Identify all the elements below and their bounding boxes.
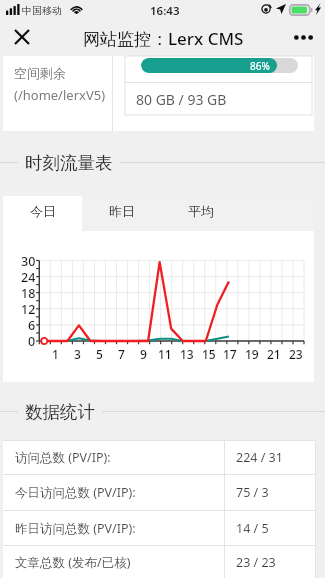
staticText: (/home/lerxV5) bbox=[14, 86, 106, 104]
button[interactable]: 今日 bbox=[3, 196, 82, 231]
button[interactable]: 昨日访问总数 (PV/IP): bbox=[3, 511, 316, 545]
staticText: 今日访问总数 (PV/IP): bbox=[15, 484, 136, 501]
staticText: 17 bbox=[223, 346, 237, 362]
staticText: 网站监控：Lerx CMS bbox=[83, 27, 244, 50]
staticText: 5 bbox=[96, 346, 103, 362]
staticText: 数据统计 bbox=[25, 401, 95, 422]
button[interactable]: More options bbox=[287, 23, 320, 51]
staticText: 11 bbox=[158, 346, 172, 362]
staticText: 30 bbox=[21, 253, 36, 270]
button[interactable]: 平均 bbox=[161, 196, 240, 231]
staticText: 23 bbox=[289, 346, 303, 362]
staticText: 19 bbox=[245, 346, 259, 362]
staticText: 时刻流量表 bbox=[25, 152, 113, 173]
staticText: 中国移动 bbox=[22, 4, 62, 17]
staticText: 16:43 bbox=[150, 3, 180, 19]
staticText: 6 bbox=[28, 317, 36, 334]
button[interactable]: 访问总数 (PV/IP): bbox=[3, 440, 316, 474]
staticText: 9 bbox=[140, 346, 147, 362]
staticText: 昨日 bbox=[109, 203, 135, 219]
staticText: 24 bbox=[21, 269, 36, 286]
staticText: 昨日访问总数 (PV/IP): bbox=[15, 520, 136, 537]
staticText: 今日 bbox=[30, 203, 56, 219]
staticText: 80 GB / 93 GB bbox=[136, 90, 227, 109]
staticText: 文章总数 (发布/已核) bbox=[15, 554, 131, 571]
button[interactable]: Close bbox=[8, 23, 36, 51]
staticText: 75 / 3 bbox=[236, 484, 269, 501]
button[interactable]: 文章总数 (发布/已核) bbox=[3, 546, 316, 578]
button[interactable]: 昨日 bbox=[82, 196, 161, 231]
staticText: 23 / 23 bbox=[236, 554, 276, 571]
staticText: 21 bbox=[267, 346, 281, 362]
staticText: 1 bbox=[52, 346, 59, 362]
staticText: 空间剩余 bbox=[14, 65, 66, 81]
staticText: 224 / 31 bbox=[236, 449, 283, 466]
staticText: 12 bbox=[21, 301, 36, 318]
staticText: 86% bbox=[250, 59, 270, 73]
staticText: 18 bbox=[21, 285, 36, 302]
staticText: 访问总数 (PV/IP): bbox=[15, 449, 111, 466]
button[interactable]: 今日访问总数 (PV/IP): bbox=[3, 475, 316, 510]
staticText: 平均 bbox=[188, 203, 214, 219]
staticText: 7 bbox=[118, 346, 125, 362]
staticText: 15 bbox=[202, 346, 216, 362]
staticText: 14 / 5 bbox=[236, 520, 269, 537]
staticText: 13 bbox=[180, 346, 194, 362]
staticText: 3 bbox=[74, 346, 81, 362]
staticText: 0 bbox=[28, 333, 36, 350]
